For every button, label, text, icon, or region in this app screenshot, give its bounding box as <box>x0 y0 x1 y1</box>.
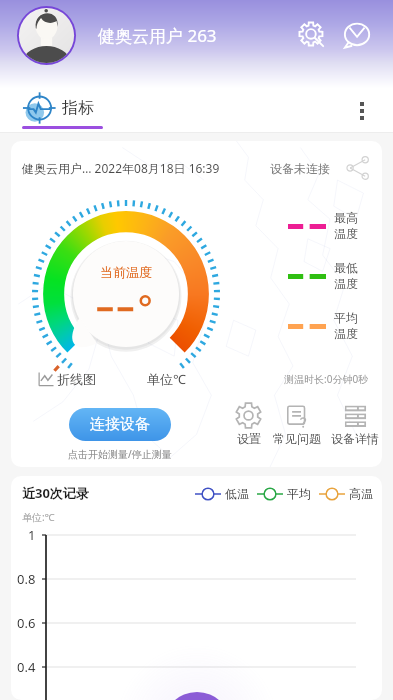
staticText: 测温时长:0分钟0秒 <box>284 372 369 386</box>
button[interactable]: Share <box>344 154 372 182</box>
staticText: 设置 <box>237 431 261 446</box>
button[interactable]: More options <box>347 96 377 126</box>
button[interactable]: 常见问题 <box>273 402 321 446</box>
staticText: 设备详情 <box>331 431 379 446</box>
button[interactable]: 折线图 <box>38 371 96 387</box>
staticText: 高温 <box>349 486 373 501</box>
button[interactable]: Settings <box>296 19 328 51</box>
staticText: 最高 温度 <box>334 210 358 242</box>
staticText: 平均 温度 <box>334 310 358 342</box>
staticText: 健奥云用户 263 <box>98 24 217 47</box>
staticText: 连接设备 <box>90 415 150 434</box>
button[interactable]: Start measurement <box>163 692 231 700</box>
button[interactable]: 设备详情 <box>331 402 379 446</box>
staticText: 健奥云用户… 2022年08月18日 16:39 <box>22 160 220 176</box>
staticText: 低温 <box>225 486 249 501</box>
staticText: 当前温度 <box>100 264 152 280</box>
staticText: 平均 <box>287 486 311 501</box>
button[interactable]: Messages <box>340 19 372 51</box>
staticText: 设备未连接 <box>270 161 330 176</box>
staticText: 折线图 <box>57 371 96 387</box>
staticText: 单位:℃ <box>22 510 55 524</box>
staticText: 点击开始测量/停止测量 <box>68 447 172 461</box>
button[interactable]: 连接设备 <box>69 408 171 441</box>
staticText: 最低 温度 <box>334 260 358 292</box>
button[interactable]: 设置 <box>235 402 262 446</box>
staticText: 单位℃ <box>147 370 186 388</box>
staticText: 0.8 <box>17 570 36 588</box>
staticText: 1 <box>28 526 36 544</box>
staticText: 指标 <box>62 98 94 118</box>
staticText: 近30次记录 <box>22 484 89 502</box>
staticText: 常见问题 <box>273 431 321 446</box>
button[interactable]: Profile <box>17 6 76 65</box>
staticText: 0.4 <box>17 658 36 676</box>
button[interactable]: 指标 <box>22 90 104 132</box>
staticText: 0.6 <box>17 614 36 632</box>
